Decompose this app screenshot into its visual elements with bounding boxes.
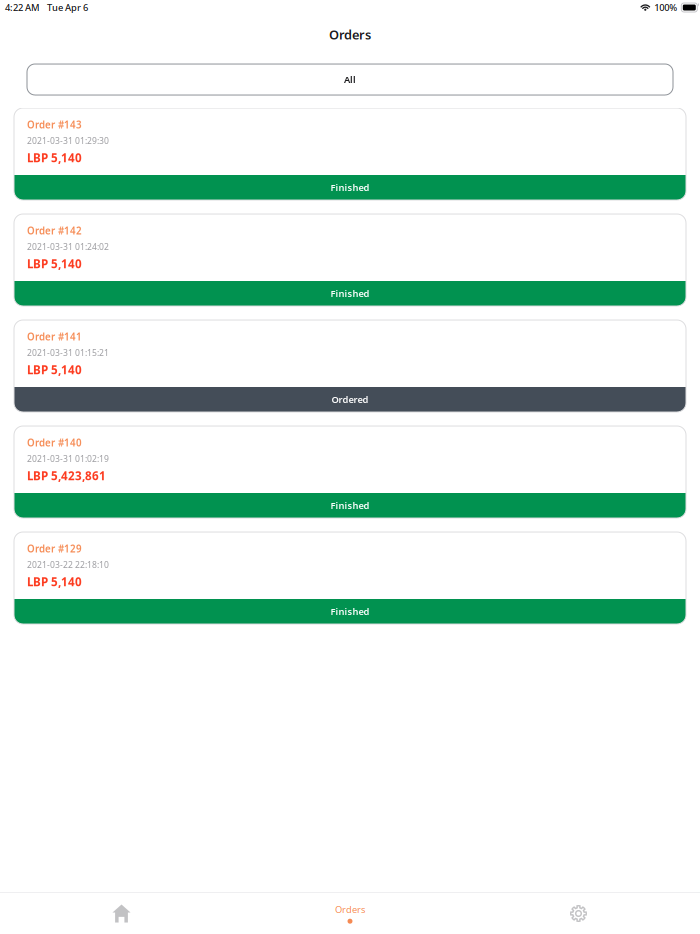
staticText: 2021-03-31 01:15:21	[27, 347, 109, 358]
staticText: LBP 5,140	[27, 150, 82, 166]
staticText: Order #141	[27, 330, 82, 343]
staticText: LBP 5,140	[27, 256, 82, 272]
button[interactable]: Home	[0, 893, 243, 934]
staticText: LBP 5,140	[27, 574, 82, 590]
staticText: Orders	[329, 26, 371, 43]
staticText: LBP 5,140	[27, 362, 82, 378]
staticText: 4:22 AM	[5, 1, 40, 14]
staticText: All	[344, 73, 356, 86]
staticText: 2021-03-31 01:29:30	[27, 135, 109, 146]
staticText: LBP 5,423,861	[27, 468, 106, 484]
staticText: Order #142	[27, 224, 82, 237]
staticText: Finished	[330, 499, 369, 512]
staticText: Order #129	[27, 542, 82, 555]
staticText: Order #143	[27, 118, 82, 131]
button[interactable]: Order #140	[14, 426, 686, 518]
staticText: Ordered	[331, 393, 368, 406]
staticText: 2021-03-31 01:24:02	[27, 241, 109, 252]
button[interactable]: Order #143	[14, 108, 686, 200]
button[interactable]: Orders	[243, 893, 457, 934]
staticText: Finished	[330, 287, 369, 300]
staticText: Order #140	[27, 436, 82, 449]
staticText: 2021-03-31 01:02:19	[27, 453, 109, 464]
button[interactable]: Order #141	[14, 320, 686, 412]
staticText: Orders	[335, 903, 365, 916]
button[interactable]: Order #129	[14, 532, 686, 624]
staticText: Tue Apr 6	[47, 1, 88, 14]
staticText: 100%	[654, 1, 677, 14]
button[interactable]: Order #142	[14, 214, 686, 306]
staticText: 2021-03-22 22:18:10	[27, 559, 109, 570]
button[interactable]: Settings	[457, 893, 700, 934]
staticText: Finished	[330, 181, 369, 194]
staticText: Finished	[330, 605, 369, 618]
button[interactable]: All	[27, 64, 673, 95]
